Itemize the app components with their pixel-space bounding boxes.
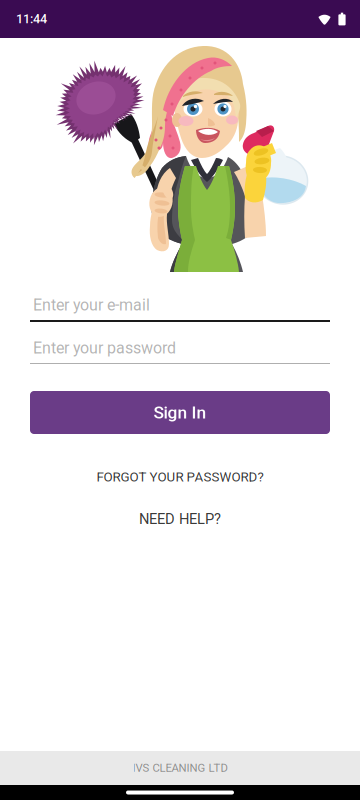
button[interactable]: Sign In [30,391,330,434]
staticText: FORGOT YOUR PASSWORD? [96,469,263,485]
staticText: 11:44 [16,12,47,26]
button[interactable]: NEED HELP? [30,510,330,528]
staticText: Enter your password [33,339,176,357]
button[interactable]: FORGOT YOUR PASSWORD? [30,468,330,486]
staticText: NEED HELP? [139,510,221,528]
staticText: Sign In [153,402,206,423]
staticText: IVS CLEANING LTD [132,761,227,775]
staticText: Enter your e-mail [33,296,150,314]
